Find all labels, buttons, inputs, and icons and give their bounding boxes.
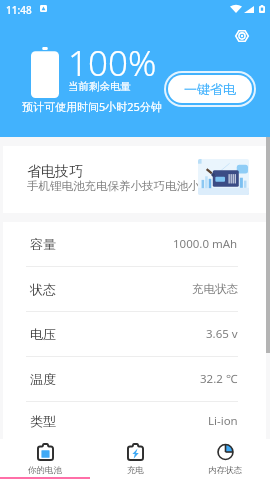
staticText: 内存状态	[208, 465, 242, 476]
button[interactable]: 电压	[3, 312, 266, 356]
staticText: 11:48	[6, 3, 32, 17]
button[interactable]: 内存状态	[180, 439, 270, 479]
button[interactable]: 温度	[3, 357, 266, 401]
staticText: 充电状态	[192, 282, 238, 296]
staticText: 3.65 v	[206, 326, 238, 342]
staticText: 状态	[30, 281, 56, 297]
button[interactable]: 你的电池	[0, 439, 90, 479]
staticText: 充电	[127, 465, 144, 476]
staticText: 1000.0 mAh	[173, 236, 238, 252]
button[interactable]: 容量	[3, 222, 266, 266]
staticText: 类型	[30, 413, 56, 429]
staticText: 一键省电	[184, 81, 236, 97]
button[interactable]: 一键省电	[168, 75, 252, 103]
staticText: 32.2 ℃	[200, 371, 238, 387]
staticText: 容量	[30, 236, 56, 252]
staticText: 电压	[30, 326, 56, 342]
staticText: 手机锂电池充电保养小技巧电池小贴士	[27, 179, 267, 193]
staticText: 你的电池	[28, 465, 62, 476]
button[interactable]: 省电技巧	[3, 146, 266, 213]
button[interactable]: 状态	[3, 267, 266, 311]
staticText: 100%	[68, 39, 157, 87]
staticText: Li-ion	[208, 413, 238, 429]
button[interactable]: Settings	[228, 22, 256, 50]
staticText: 当前剩余电量	[68, 80, 131, 93]
button[interactable]: 类型	[3, 402, 266, 439]
staticText: 预计可使用时间5小时25分钟	[22, 99, 162, 114]
staticText: 省电技巧	[27, 163, 83, 181]
button[interactable]: 充电	[90, 439, 180, 479]
staticText: 温度	[30, 371, 56, 387]
